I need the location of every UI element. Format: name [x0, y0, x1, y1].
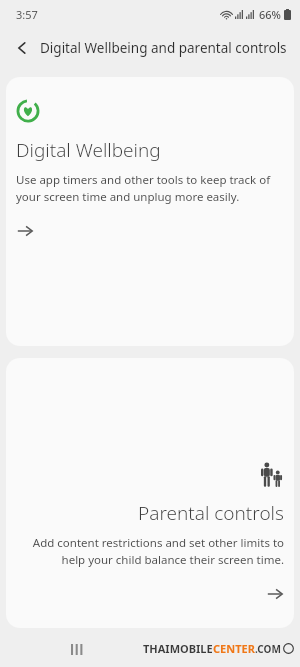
button[interactable]: Parental controls — [6, 358, 294, 628]
button[interactable]: Back — [8, 34, 36, 62]
staticText: CENTER — [213, 641, 255, 656]
button[interactable]: Digital Wellbeing — [6, 77, 294, 346]
staticText: Digital Wellbeing — [16, 137, 161, 163]
button[interactable]: Recents — [62, 634, 92, 664]
staticText: .COM — [255, 642, 281, 656]
staticText: 66% — [259, 7, 281, 22]
staticText: THAIMOBILE — [143, 641, 213, 656]
staticText: Parental controls — [138, 500, 284, 526]
button[interactable]: Open Digital Wellbeing — [16, 218, 42, 244]
staticText: Use app timers and other tools to keep t… — [16, 172, 280, 204]
button[interactable]: Open Parental controls — [258, 581, 284, 607]
staticText: 3:57 — [16, 7, 38, 22]
staticText: Digital Wellbeing and parental controls — [40, 39, 287, 57]
staticText: Add content restrictions and set other l… — [20, 535, 284, 567]
